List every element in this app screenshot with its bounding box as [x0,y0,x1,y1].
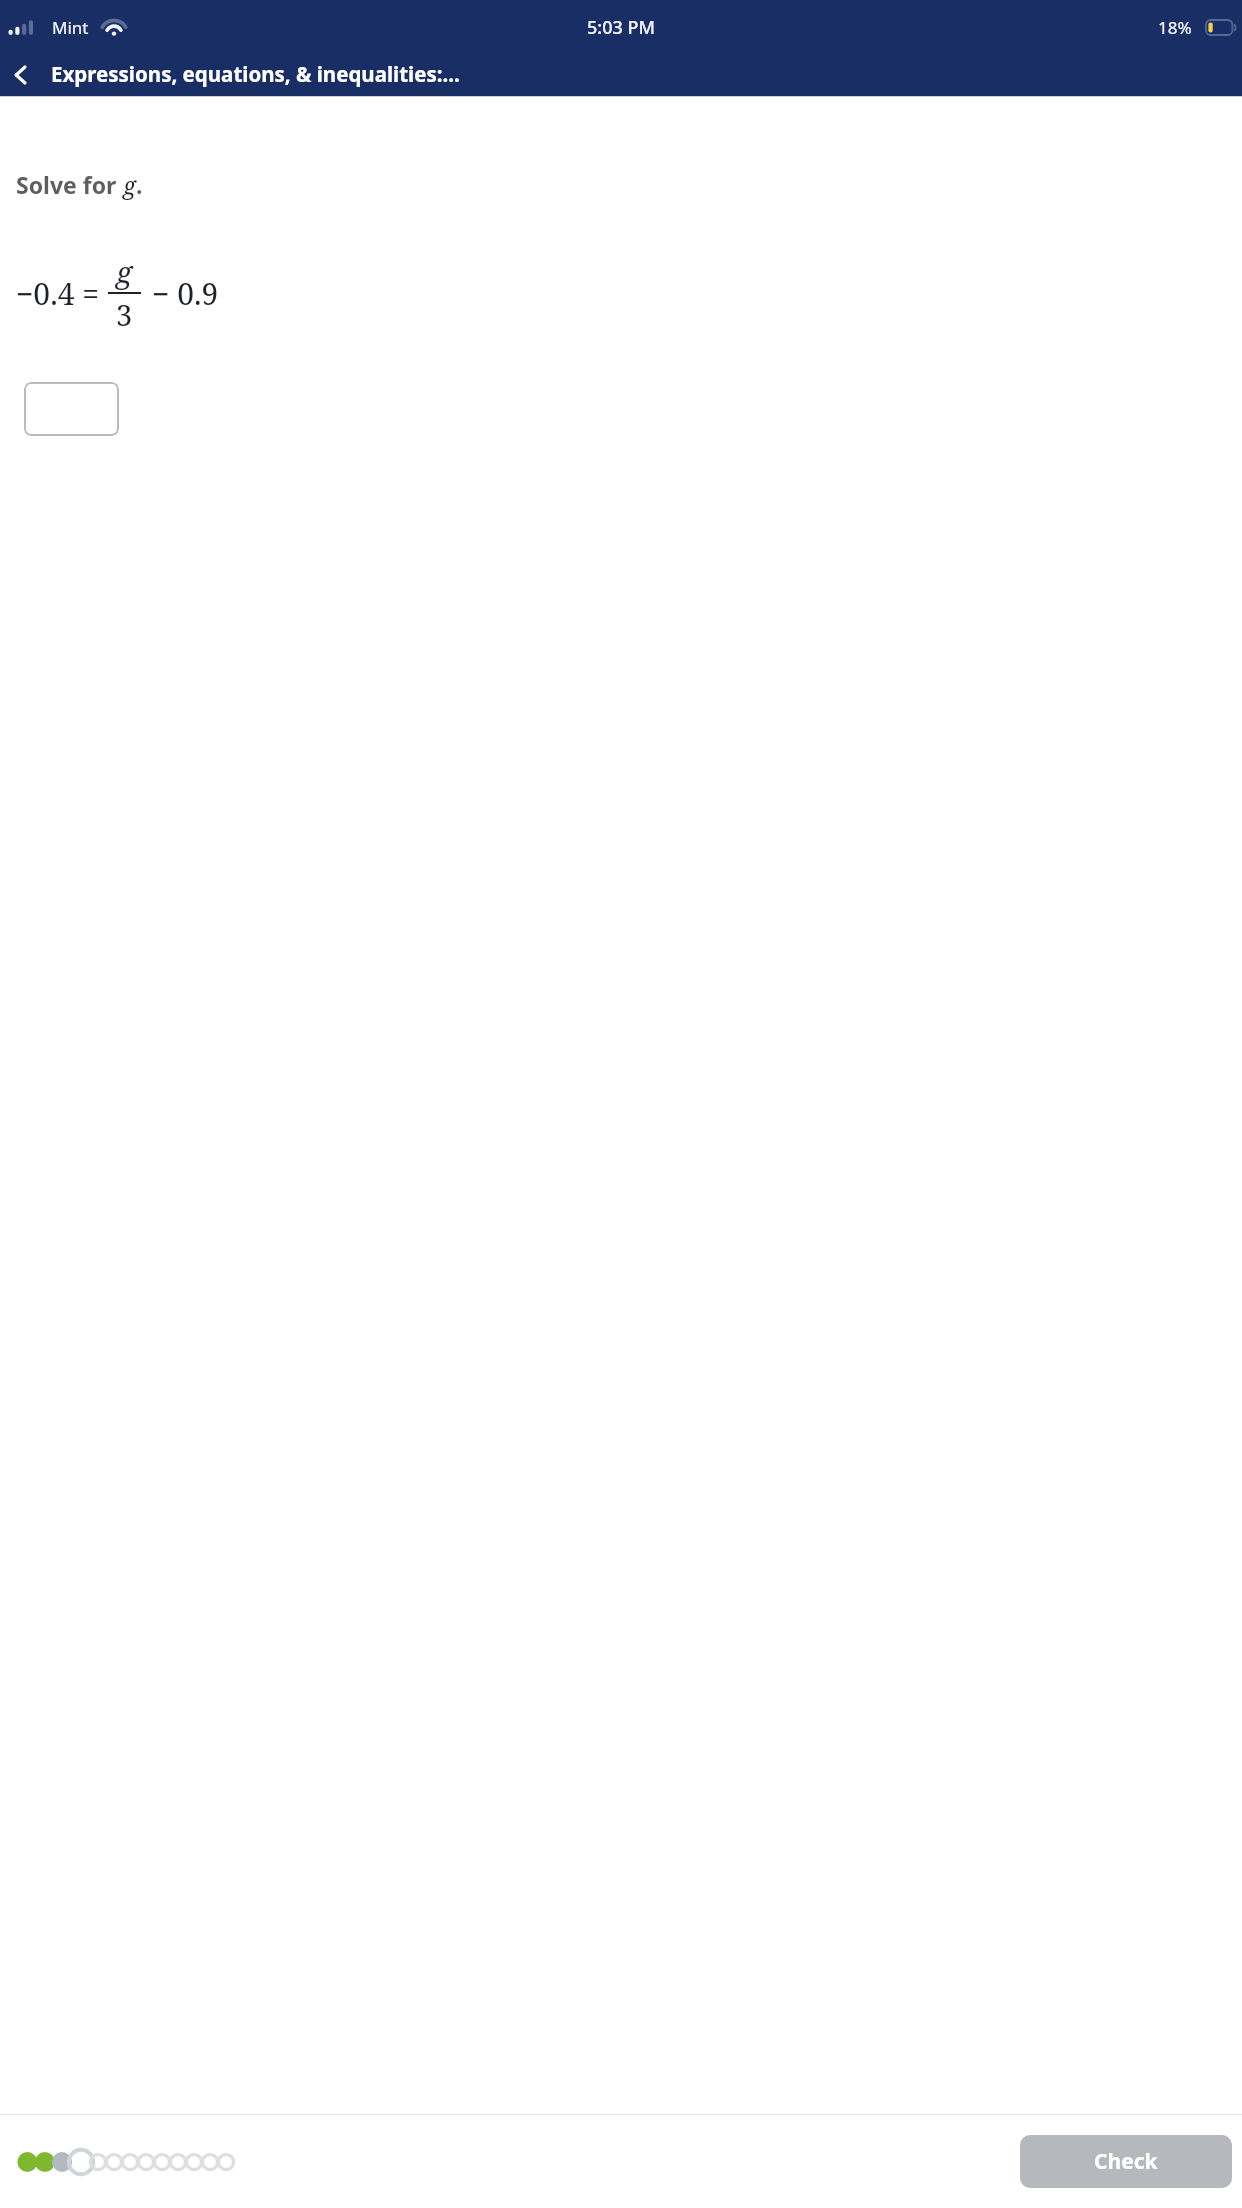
staticText: −0.4 = [16,273,99,314]
staticText: 5:03 PM [587,15,655,40]
button[interactable]: Check [1020,2135,1232,2188]
staticText: g [116,252,133,291]
staticText: 18% [1158,16,1192,39]
staticText: Check [1094,2147,1158,2176]
button[interactable]: Progress [14,2145,194,2179]
staticText: g [123,169,136,200]
staticText: Mint [52,16,89,39]
staticText: . [136,169,143,200]
button[interactable]: Back [0,54,44,96]
staticText: 3 [116,295,133,334]
button[interactable]: Answer input [24,382,119,436]
staticText: Expressions, equations, & inequalities:.… [51,60,460,88]
staticText: − 0.9 [152,273,219,314]
staticText: Solve for [16,169,123,200]
